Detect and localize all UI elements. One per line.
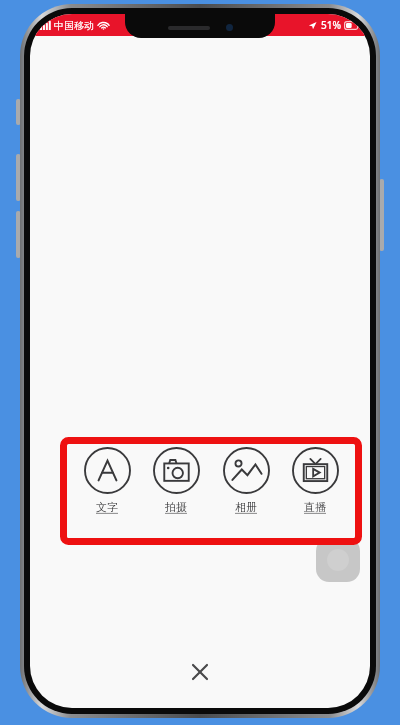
button[interactable]: 直播 xyxy=(284,447,346,514)
button[interactable]: 拍摄 xyxy=(145,447,207,514)
staticText: 51% xyxy=(321,18,341,32)
button[interactable]: Assistive touch xyxy=(316,538,360,582)
button[interactable]: Close xyxy=(183,655,217,689)
staticText: 相册 xyxy=(235,500,257,514)
staticText: 文字 xyxy=(96,500,118,514)
staticText: 直播 xyxy=(304,500,326,514)
button[interactable]: 文字 xyxy=(76,447,138,514)
button[interactable]: 相册 xyxy=(215,447,277,514)
staticText: 中国移动 xyxy=(54,19,94,32)
staticText: 拍摄 xyxy=(165,500,187,514)
